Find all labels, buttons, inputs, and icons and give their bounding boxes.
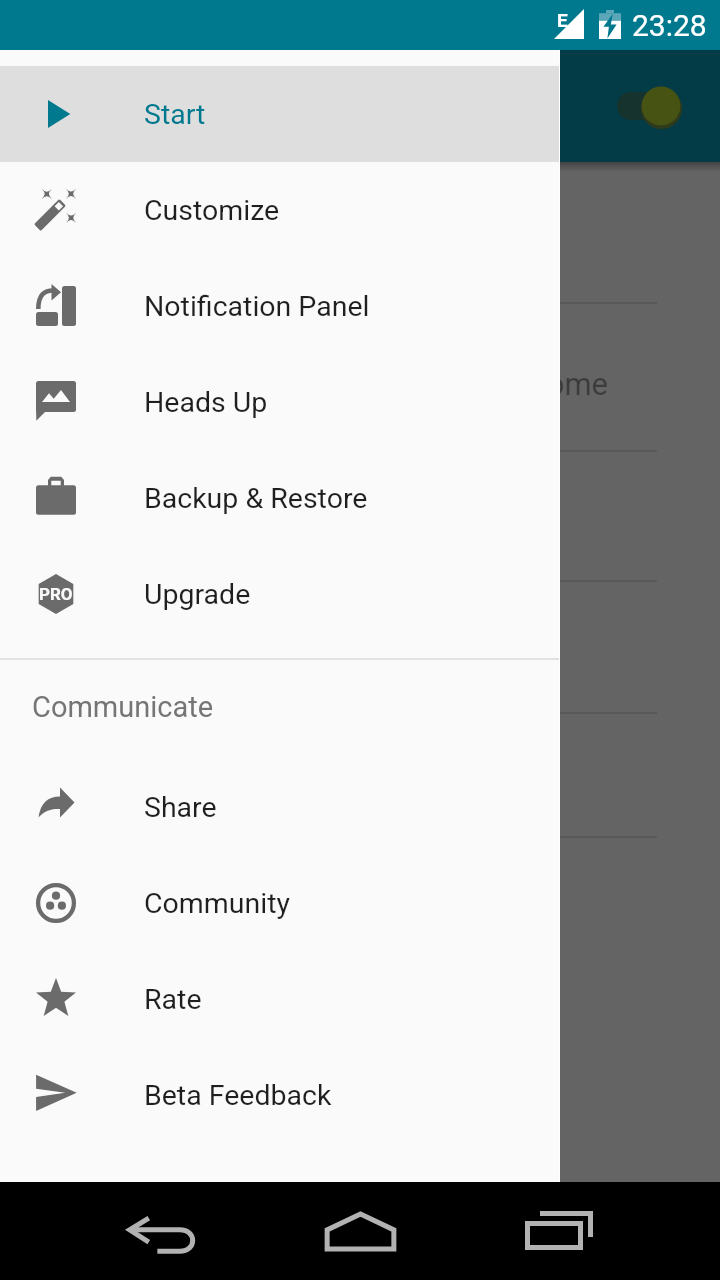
staticText: Beta Feedback [144, 1079, 332, 1112]
staticText: Start [144, 98, 206, 131]
staticText: Communicate [32, 690, 214, 724]
button[interactable]: Community [0, 855, 560, 951]
staticText: Upgrade [144, 578, 251, 611]
staticText: Lock screen / Home [330, 366, 609, 402]
staticText: E [557, 9, 568, 31]
staticText: Heads Up [144, 386, 268, 419]
button[interactable]: Home [280, 1182, 440, 1280]
button[interactable]: Heads Up [0, 354, 560, 450]
button[interactable]: Share [0, 759, 560, 855]
button[interactable]: Beta Feedback [0, 1047, 560, 1143]
staticText: Share [144, 791, 217, 824]
button[interactable]: Back [80, 1182, 240, 1280]
staticText: Notification Panel [144, 290, 370, 323]
button[interactable]: Customize [0, 162, 560, 258]
button[interactable]: Start [0, 66, 560, 162]
staticText: Community [144, 887, 290, 920]
staticText: Rate [144, 983, 202, 1016]
staticText: 23:28 [632, 8, 707, 43]
button[interactable]: Backup & Restore [0, 450, 560, 546]
button[interactable]: Recent apps [525, 1182, 685, 1280]
button[interactable]: Notification Panel [0, 258, 560, 354]
button[interactable]: Rate [0, 951, 560, 1047]
button[interactable]: PRO [0, 546, 560, 642]
staticText: Backup & Restore [144, 482, 368, 515]
staticText: PRO [39, 584, 73, 604]
staticText: Customize [144, 194, 280, 227]
